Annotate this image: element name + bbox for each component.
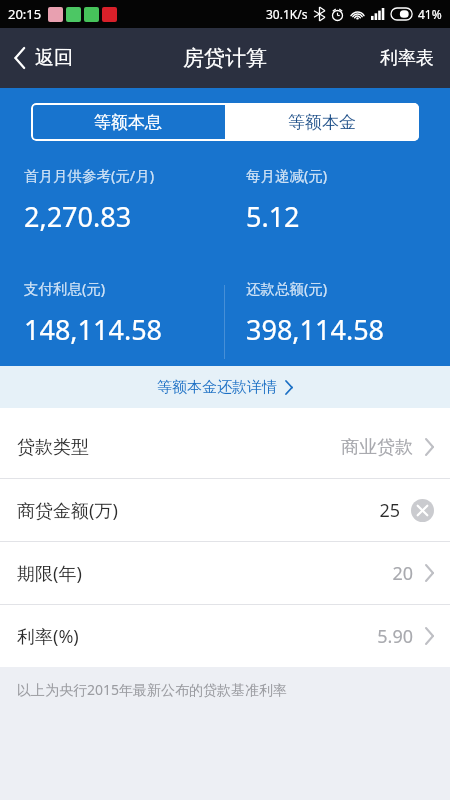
staticText: 返回: [35, 46, 73, 70]
staticText: 贷款类型: [17, 436, 89, 459]
button[interactable]: 返回: [0, 38, 87, 78]
button[interactable]: 贷款类型: [0, 416, 450, 478]
button[interactable]: 利率(%): [0, 605, 450, 667]
button[interactable]: 等额本金还款详情: [0, 366, 450, 408]
staticText: 房贷计算: [183, 45, 267, 71]
staticText: 398,114.58: [246, 311, 385, 348]
staticText: 等额本息: [94, 112, 162, 133]
staticText: 20:15: [8, 5, 42, 23]
button[interactable]: 期限(年): [0, 542, 450, 604]
staticText: 30.1K/s: [266, 6, 308, 22]
staticText: 商贷金额(万): [17, 498, 118, 523]
staticText: 支付利息(元): [24, 278, 106, 298]
staticText: 148,114.58: [24, 311, 163, 348]
button[interactable]: Clear: [411, 499, 434, 522]
staticText: 等额本金: [288, 112, 356, 133]
staticText: 41%: [418, 6, 442, 22]
button[interactable]: 利率表: [364, 37, 450, 80]
button[interactable]: 商贷金额(万): [0, 479, 450, 541]
staticText: 商业贷款: [341, 436, 413, 459]
staticText: 2,270.83: [24, 198, 132, 235]
button[interactable]: 等额本息: [31, 103, 225, 141]
staticText: 20: [392, 561, 413, 586]
staticText: 首月月供参考(元/月): [24, 165, 155, 185]
staticText: 期限(年): [17, 561, 82, 586]
staticText: 还款总额(元): [246, 278, 328, 298]
staticText: 每月递减(元): [246, 165, 328, 185]
staticText: 25: [379, 498, 400, 523]
button[interactable]: 等额本金: [225, 103, 419, 141]
staticText: 等额本金还款详情: [157, 378, 277, 397]
staticText: 5.12: [246, 198, 300, 235]
staticText: 利率表: [380, 47, 434, 70]
staticText: 5.90: [377, 624, 413, 649]
staticText: 利率(%): [17, 624, 79, 649]
staticText: 以上为央行2015年最新公布的贷款基准利率: [17, 680, 288, 699]
